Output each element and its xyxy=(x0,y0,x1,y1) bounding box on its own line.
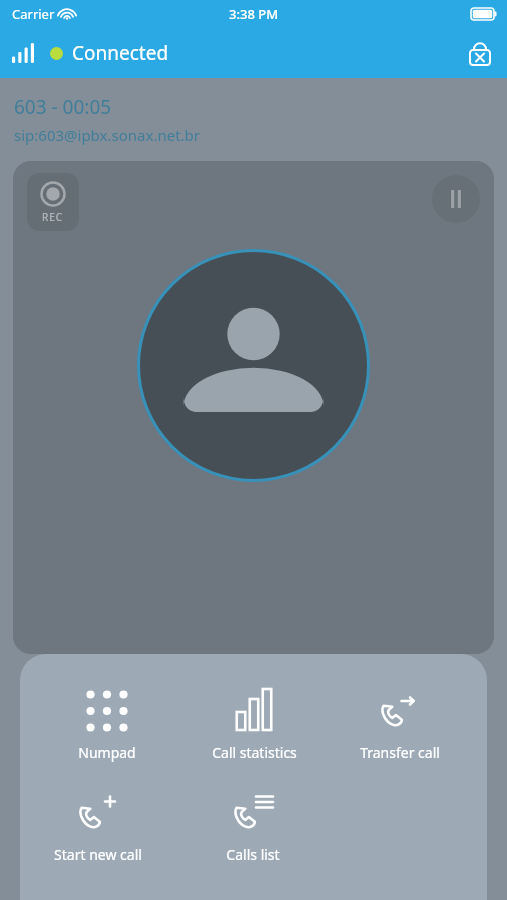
staticText: Carrier xyxy=(12,5,55,23)
button[interactable]: Transfer call xyxy=(340,684,460,764)
staticText: Connected xyxy=(72,40,169,66)
button[interactable]: Calls list xyxy=(193,786,313,866)
button[interactable]: Secure call disabled xyxy=(465,38,495,68)
staticText: Calls list xyxy=(226,845,280,864)
staticText: sip:603@ipbx.sonax.net.br xyxy=(14,125,200,145)
staticText: REC xyxy=(42,210,64,224)
staticText: Call statistics xyxy=(212,743,297,762)
button[interactable]: Pause xyxy=(432,175,480,223)
button[interactable]: Call statistics xyxy=(194,684,314,764)
staticText: 3:38 PM xyxy=(229,5,279,23)
staticText: 603 - 00:05 xyxy=(14,94,112,120)
button[interactable]: Numpad xyxy=(47,684,167,764)
staticText: Transfer call xyxy=(360,743,440,762)
staticText: Numpad xyxy=(78,743,136,762)
staticText: Start new call xyxy=(54,845,142,864)
button[interactable]: Record xyxy=(27,173,79,231)
button[interactable]: Start new call xyxy=(38,786,158,866)
